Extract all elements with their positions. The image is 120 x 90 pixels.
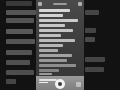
button[interactable] [39,18,81,22]
button[interactable] [39,33,81,37]
button[interactable] [39,43,81,47]
button[interactable] [39,13,81,17]
button[interactable] [39,48,81,52]
button[interactable] [39,28,81,32]
button[interactable] [39,63,81,67]
button[interactable] [39,58,81,62]
button[interactable] [39,23,81,27]
button[interactable]: Record [55,79,65,89]
button[interactable] [39,53,81,57]
button[interactable]: More options [78,2,82,6]
button[interactable]: Gallery [76,82,81,87]
button[interactable] [39,8,81,12]
button[interactable]: Close [38,2,42,6]
button[interactable] [39,68,81,72]
button[interactable] [39,38,81,42]
button[interactable] [39,79,57,81]
